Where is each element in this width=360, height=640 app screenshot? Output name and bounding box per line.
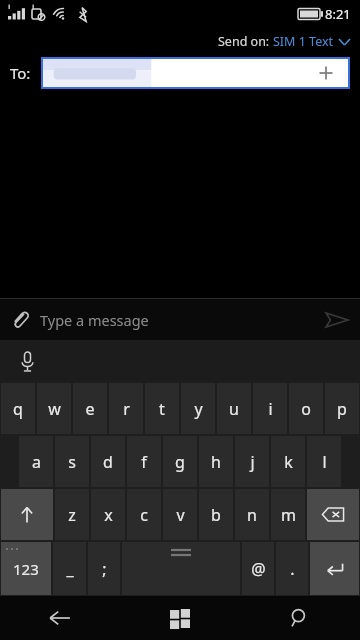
button[interactable]: i: [253, 383, 287, 434]
button[interactable]: l: [307, 436, 341, 487]
button[interactable]: g: [163, 436, 197, 487]
button[interactable]: Start: [120, 596, 240, 640]
staticText: ;: [102, 558, 107, 580]
staticText: q: [13, 398, 23, 420]
button[interactable]: o: [289, 383, 323, 434]
staticText: r: [123, 398, 130, 420]
button[interactable]: Voice input: [8, 342, 46, 380]
button[interactable]: m: [271, 489, 305, 540]
staticText: t: [159, 398, 165, 420]
button[interactable]: x: [91, 489, 125, 540]
staticText: z: [68, 504, 76, 526]
button[interactable]: a: [19, 436, 53, 487]
button[interactable]: @: [242, 542, 274, 595]
staticText: Send on:: [218, 33, 273, 50]
staticText: h: [211, 451, 221, 473]
button[interactable]: s: [55, 436, 89, 487]
button[interactable]: ;: [88, 542, 120, 595]
button[interactable]: j: [235, 436, 269, 487]
button[interactable]: [43, 59, 348, 87]
button[interactable]: Back: [0, 596, 120, 640]
button[interactable]: Attach: [0, 300, 40, 340]
staticText: v: [176, 504, 185, 526]
button[interactable]: 123: [1, 542, 51, 595]
button[interactable]: v: [163, 489, 197, 540]
staticText: o: [301, 398, 311, 420]
staticText: c: [140, 504, 148, 526]
staticText: Type a message: [40, 310, 149, 330]
button[interactable]: t: [145, 383, 179, 434]
staticText: s: [68, 451, 76, 473]
staticText: p: [337, 398, 347, 420]
staticText: w: [48, 398, 61, 420]
staticText: d: [103, 451, 113, 473]
staticText: x: [104, 504, 113, 526]
button[interactable]: f: [127, 436, 161, 487]
staticText: n: [247, 504, 257, 526]
button[interactable]: u: [217, 383, 251, 434]
button[interactable]: n: [235, 489, 269, 540]
staticText: f: [141, 451, 147, 473]
staticText: g: [175, 451, 185, 473]
staticText: j: [250, 451, 255, 473]
button[interactable]: Space: [122, 542, 240, 595]
button[interactable]: p: [325, 383, 359, 434]
staticText: 123: [13, 559, 39, 579]
button[interactable]: w: [37, 383, 71, 434]
staticText: SIM 1 Text: [273, 33, 334, 50]
button[interactable]: Shift: [1, 489, 53, 540]
staticText: y: [194, 398, 203, 420]
button[interactable]: Search: [240, 596, 360, 640]
button[interactable]: k: [271, 436, 305, 487]
button[interactable]: Type a message: [40, 299, 314, 340]
staticText: _: [66, 558, 74, 580]
button[interactable]: r: [109, 383, 143, 434]
staticText: To:: [10, 63, 31, 83]
button[interactable]: c: [127, 489, 161, 540]
staticText: u: [229, 398, 239, 420]
button[interactable]: b: [199, 489, 233, 540]
staticText: b: [211, 504, 221, 526]
staticText: e: [85, 398, 95, 420]
staticText: i: [268, 398, 273, 420]
staticText: k: [284, 451, 293, 473]
staticText: .: [290, 558, 295, 580]
button[interactable]: Backspace: [307, 489, 359, 540]
button[interactable]: Send: [314, 299, 360, 340]
staticText: 8:21: [325, 5, 351, 23]
button[interactable]: Enter: [310, 542, 359, 595]
button[interactable]: q: [1, 383, 35, 434]
button[interactable]: d: [91, 436, 125, 487]
staticText: l: [322, 451, 327, 473]
button[interactable]: e: [73, 383, 107, 434]
button[interactable]: z: [55, 489, 89, 540]
staticText: m: [281, 504, 296, 526]
button[interactable]: _: [53, 542, 86, 595]
staticText: @: [251, 558, 266, 580]
button[interactable]: y: [181, 383, 215, 434]
button[interactable]: h: [199, 436, 233, 487]
button[interactable]: SIM 1 Text: [273, 33, 350, 50]
button[interactable]: .: [276, 542, 308, 595]
staticText: a: [32, 451, 41, 473]
